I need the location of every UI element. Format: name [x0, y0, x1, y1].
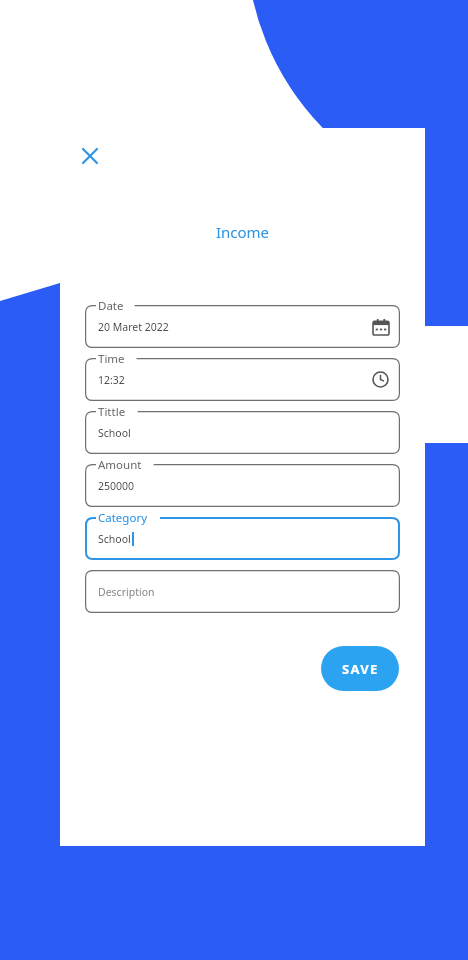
staticText: Category [98, 510, 148, 526]
staticText: 250000 [98, 479, 135, 493]
staticText: Amount [98, 457, 142, 473]
staticText: School [98, 426, 131, 440]
button[interactable]: Date [85, 305, 400, 348]
staticText: 20 Maret 2022 [98, 320, 169, 334]
staticText: Time [98, 351, 125, 367]
button[interactable]: Close [68, 134, 112, 178]
button[interactable]: Tittle [85, 411, 400, 454]
staticText: School [98, 532, 131, 546]
staticText: Description [98, 585, 155, 599]
staticText: Date [98, 298, 124, 314]
button[interactable]: Time [85, 358, 400, 401]
staticText: Tittle [98, 404, 126, 420]
staticText: Income [60, 222, 425, 242]
button[interactable]: Category [85, 517, 400, 560]
staticText: SAVE [342, 660, 379, 678]
button[interactable]: Description [85, 570, 400, 613]
button[interactable]: SAVE [321, 646, 399, 691]
other: Pick date [373, 319, 389, 335]
button[interactable]: Amount [85, 464, 400, 507]
other: Pick time [372, 371, 389, 388]
staticText: 12:32 [98, 373, 125, 387]
